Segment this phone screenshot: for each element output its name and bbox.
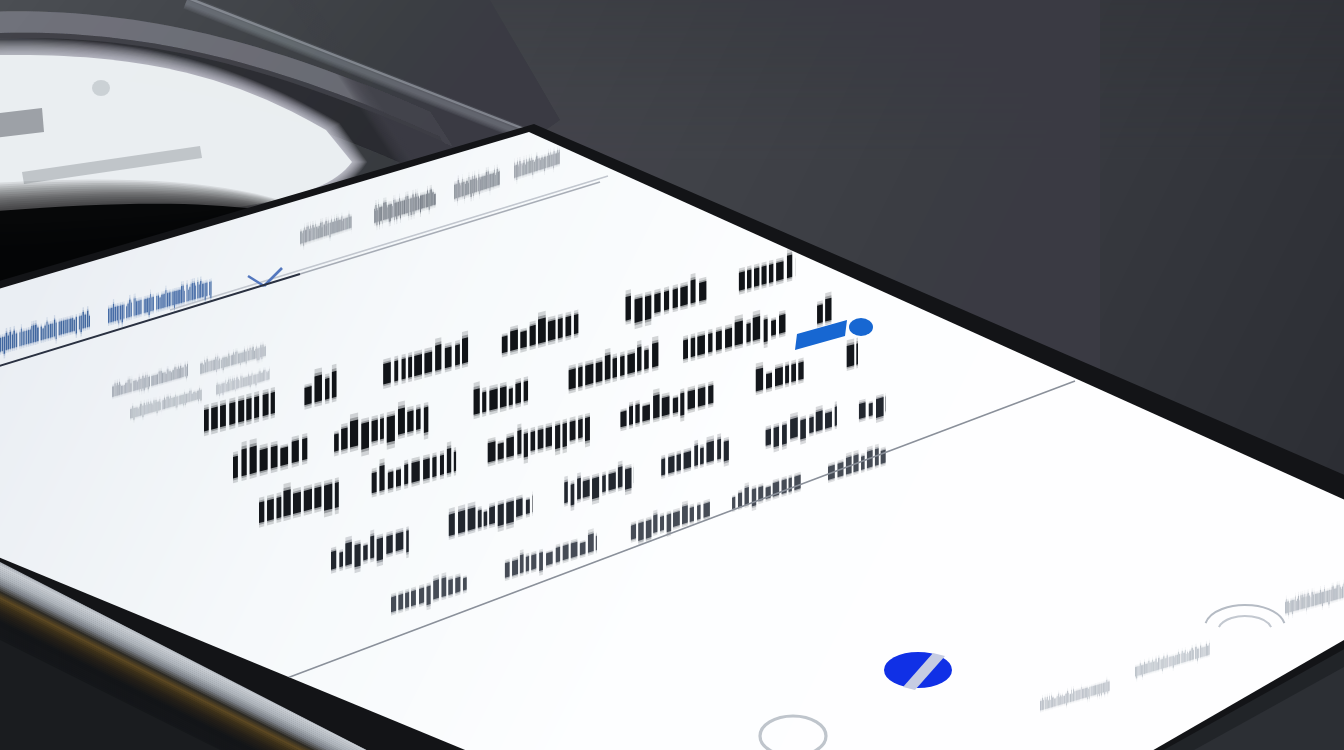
button[interactable]: Search (292, 212, 362, 258)
button[interactable]: Share (366, 190, 442, 236)
button[interactable]: Article body (196, 392, 836, 622)
button[interactable]: Tag (782, 306, 892, 364)
button[interactable]: Edit (506, 146, 570, 188)
button[interactable]: Back to library (0, 292, 240, 366)
button[interactable]: Wi-Fi status (1178, 580, 1344, 660)
button[interactable]: Bookmark (446, 166, 512, 210)
button[interactable]: Compose (874, 640, 966, 698)
button[interactable]: Article thumbnail (180, 348, 350, 428)
